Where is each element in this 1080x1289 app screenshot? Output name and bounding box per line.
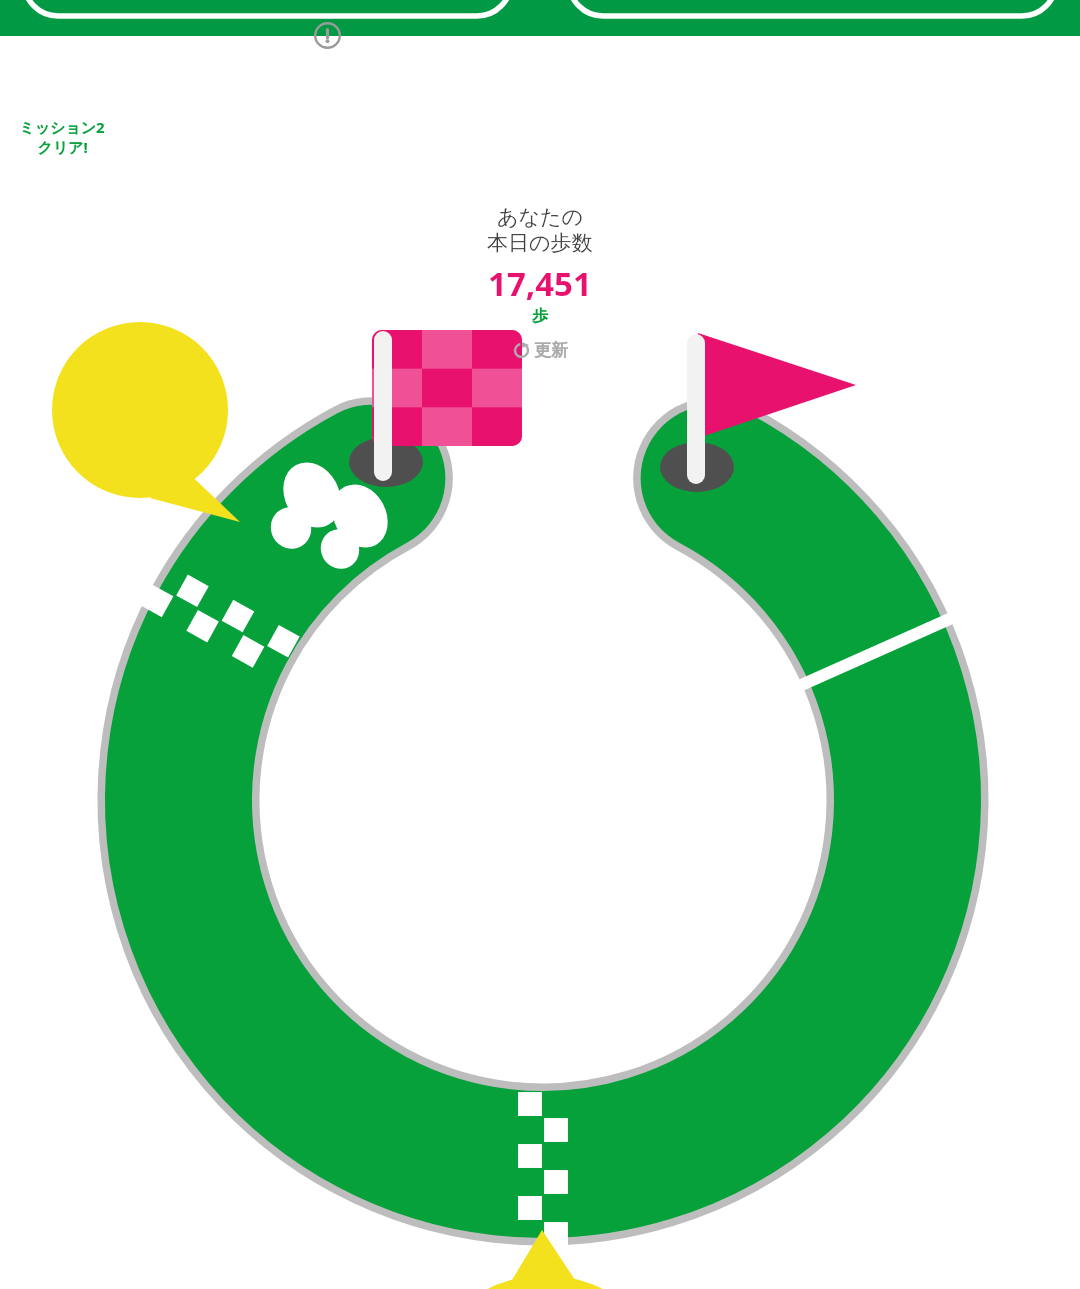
staticText: 更新 (534, 340, 568, 361)
staticText: 歩 (532, 306, 548, 326)
button[interactable]: 更新 (497, 335, 584, 366)
staticText: あなたの (497, 204, 583, 230)
staticText: ミッション2 (19, 117, 105, 137)
staticText: 本日の歩数 (487, 230, 593, 256)
staticText: 17,451 (488, 261, 592, 306)
staticText: クリア! (37, 137, 88, 157)
button[interactable]: Information (314, 22, 341, 49)
